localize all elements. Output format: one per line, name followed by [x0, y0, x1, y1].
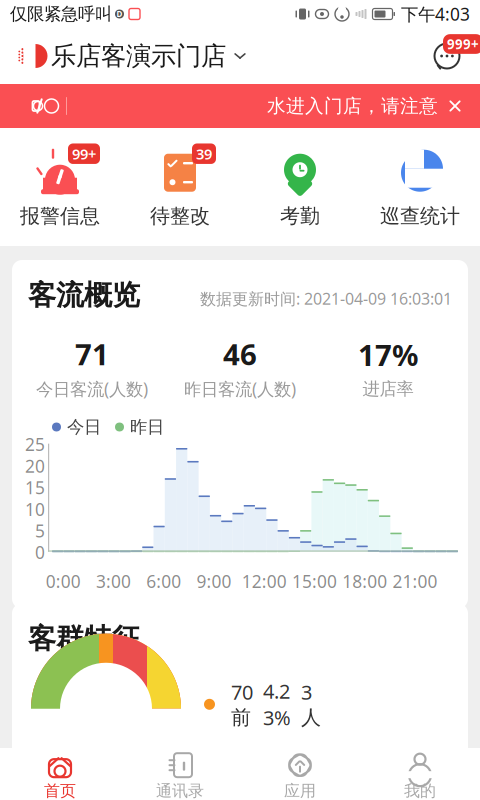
staticText: 5	[35, 519, 45, 542]
staticText: 46	[223, 334, 257, 373]
staticText: 25	[25, 433, 45, 456]
staticText: 应用	[284, 781, 316, 800]
staticText: 6:00	[146, 570, 181, 593]
staticText: 今日	[67, 416, 101, 438]
staticText: 15:00	[292, 570, 337, 593]
staticText: 昨日客流(人数)	[184, 377, 296, 400]
staticText: 巡查统计	[380, 204, 460, 228]
staticText: 数据更新时间: 2021-04-09 16:03:01	[200, 288, 452, 309]
staticText: 下午4:03	[401, 2, 470, 25]
staticText: 昨日	[130, 416, 164, 438]
staticText: 999+	[447, 35, 479, 53]
staticText: 5人	[301, 750, 321, 800]
button[interactable]: 99+	[0, 138, 120, 236]
button[interactable]: 关闭	[438, 89, 480, 123]
button[interactable]: 考勤	[240, 138, 360, 236]
staticText: 我的	[404, 781, 436, 800]
staticText: 报警信息	[20, 204, 100, 228]
button[interactable]: 乐店客演示门店	[0, 34, 247, 77]
staticText: 15	[25, 476, 45, 499]
button[interactable]: 通讯录	[120, 747, 240, 800]
staticText: 客群特征	[28, 621, 140, 656]
staticText: D	[116, 9, 122, 19]
button[interactable]: 首页	[0, 747, 120, 800]
staticText: 21:00	[392, 570, 437, 593]
staticText: 3:00	[96, 570, 131, 593]
staticText: 39	[196, 144, 212, 163]
button[interactable]: 39	[120, 138, 240, 236]
staticText: 客流概览	[28, 278, 140, 312]
staticText: 17%	[358, 335, 418, 374]
staticText: 71	[75, 334, 109, 373]
button[interactable]: 应用	[240, 747, 360, 800]
staticText: 仅限紧急呼叫	[10, 3, 112, 25]
staticText: 20	[25, 454, 45, 477]
staticText: 水进入门店，请注意	[267, 94, 438, 117]
staticText: 乐店客演示门店	[51, 40, 226, 71]
staticText: 99+	[72, 144, 96, 163]
button[interactable]: 消息	[420, 36, 480, 76]
button[interactable]: 我的	[360, 747, 480, 800]
staticText: 今日客流(人数)	[36, 377, 148, 400]
staticText: 10	[25, 498, 45, 521]
staticText: 7.04%	[263, 749, 291, 800]
staticText: 4.23%	[263, 678, 291, 731]
staticText: 9:00	[196, 570, 231, 593]
staticText: 0:00	[46, 570, 81, 593]
button[interactable]: 巡查统计	[360, 138, 480, 236]
staticText: 首页	[44, 781, 76, 800]
staticText: 待整改	[150, 204, 210, 228]
button[interactable]: 播报	[0, 95, 52, 117]
staticText: 0	[35, 541, 45, 564]
staticText: 70前	[231, 679, 253, 730]
staticText: 3人	[301, 679, 321, 730]
staticText: 12:00	[242, 570, 287, 593]
staticText: 通讯录	[156, 781, 204, 800]
staticText: 考勤	[280, 204, 320, 228]
staticText: 进店率	[362, 378, 413, 399]
staticText: 18:00	[342, 570, 387, 593]
